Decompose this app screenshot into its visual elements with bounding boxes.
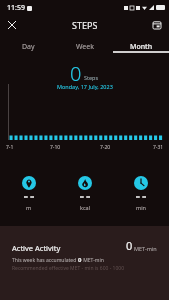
staticText: 0 [78, 256, 82, 264]
staticText: Steps [84, 74, 99, 81]
staticText: kcal [80, 204, 91, 211]
staticText: Recommended effective MET - min is 600 -… [12, 265, 124, 272]
staticText: 7-31 [153, 144, 164, 151]
staticText: MET-min [134, 245, 157, 252]
staticText: 7-1 [6, 144, 14, 151]
other: Distance [22, 176, 36, 190]
staticText: Month [130, 42, 153, 52]
other: Duration [134, 176, 148, 190]
staticText: Day [22, 42, 35, 52]
staticText: m [26, 204, 32, 211]
button[interactable]: Calendar [148, 16, 166, 34]
staticText: MET-min [82, 257, 104, 264]
button[interactable]: Calories [57, 176, 113, 211]
staticText: 0 [70, 60, 82, 82]
staticText: Week [76, 42, 95, 52]
button[interactable]: Day [0, 42, 57, 53]
staticText: Active Activity [12, 243, 61, 253]
button[interactable]: Month [113, 42, 169, 53]
staticText: 0 [126, 238, 133, 253]
staticText: 7-20 [100, 144, 111, 151]
button[interactable]: Duration [113, 176, 169, 211]
staticText: min [136, 204, 146, 211]
staticText: 7-10 [50, 144, 61, 151]
staticText: This week has accumulated [12, 257, 78, 264]
button[interactable]: Distance [0, 176, 57, 211]
staticText: 11:59 [7, 3, 25, 13]
staticText: STEPS [72, 19, 98, 31]
other: Calories [78, 176, 92, 190]
button[interactable]: Week [57, 42, 113, 53]
button[interactable]: Close [3, 16, 21, 34]
staticText: Monday, 17 July, 2023 [57, 83, 113, 90]
